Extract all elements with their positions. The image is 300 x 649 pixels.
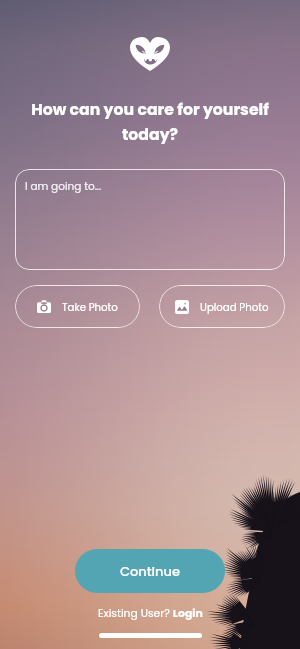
- button[interactable]: Upload Photo: [159, 285, 285, 328]
- staticText: Upload Photo: [200, 300, 269, 314]
- button[interactable]: I am going to...: [15, 169, 285, 270]
- staticText: I am going to...: [25, 179, 102, 194]
- staticText: Existing User? Login: [98, 606, 203, 621]
- button[interactable]: Existing User? Login: [94, 602, 207, 625]
- staticText: How can you care for yourself today?: [26, 99, 274, 146]
- button[interactable]: Continue: [75, 549, 225, 593]
- staticText: Continue: [120, 562, 180, 580]
- staticText: Take Photo: [62, 300, 118, 314]
- button[interactable]: Take Photo: [15, 285, 140, 328]
